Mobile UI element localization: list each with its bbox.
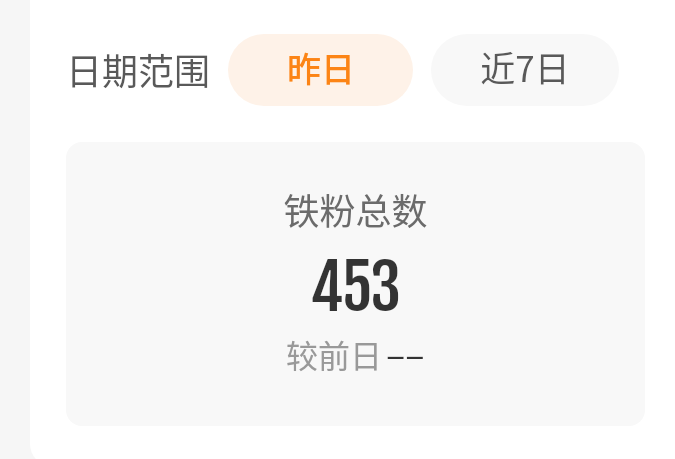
staticText: 较前日 <box>286 331 383 377</box>
button[interactable]: 铁粉总数 <box>66 142 645 426</box>
staticText: 近7日 <box>480 41 570 92</box>
staticText: 日期范围 <box>66 43 211 95</box>
staticText: 铁粉总数 <box>283 183 428 235</box>
staticText: –– <box>386 326 425 378</box>
staticText: 昨日 <box>287 43 355 92</box>
button[interactable]: 近7日 <box>431 34 619 106</box>
button[interactable]: 昨日 <box>228 34 413 106</box>
staticText: 453 <box>310 248 400 326</box>
